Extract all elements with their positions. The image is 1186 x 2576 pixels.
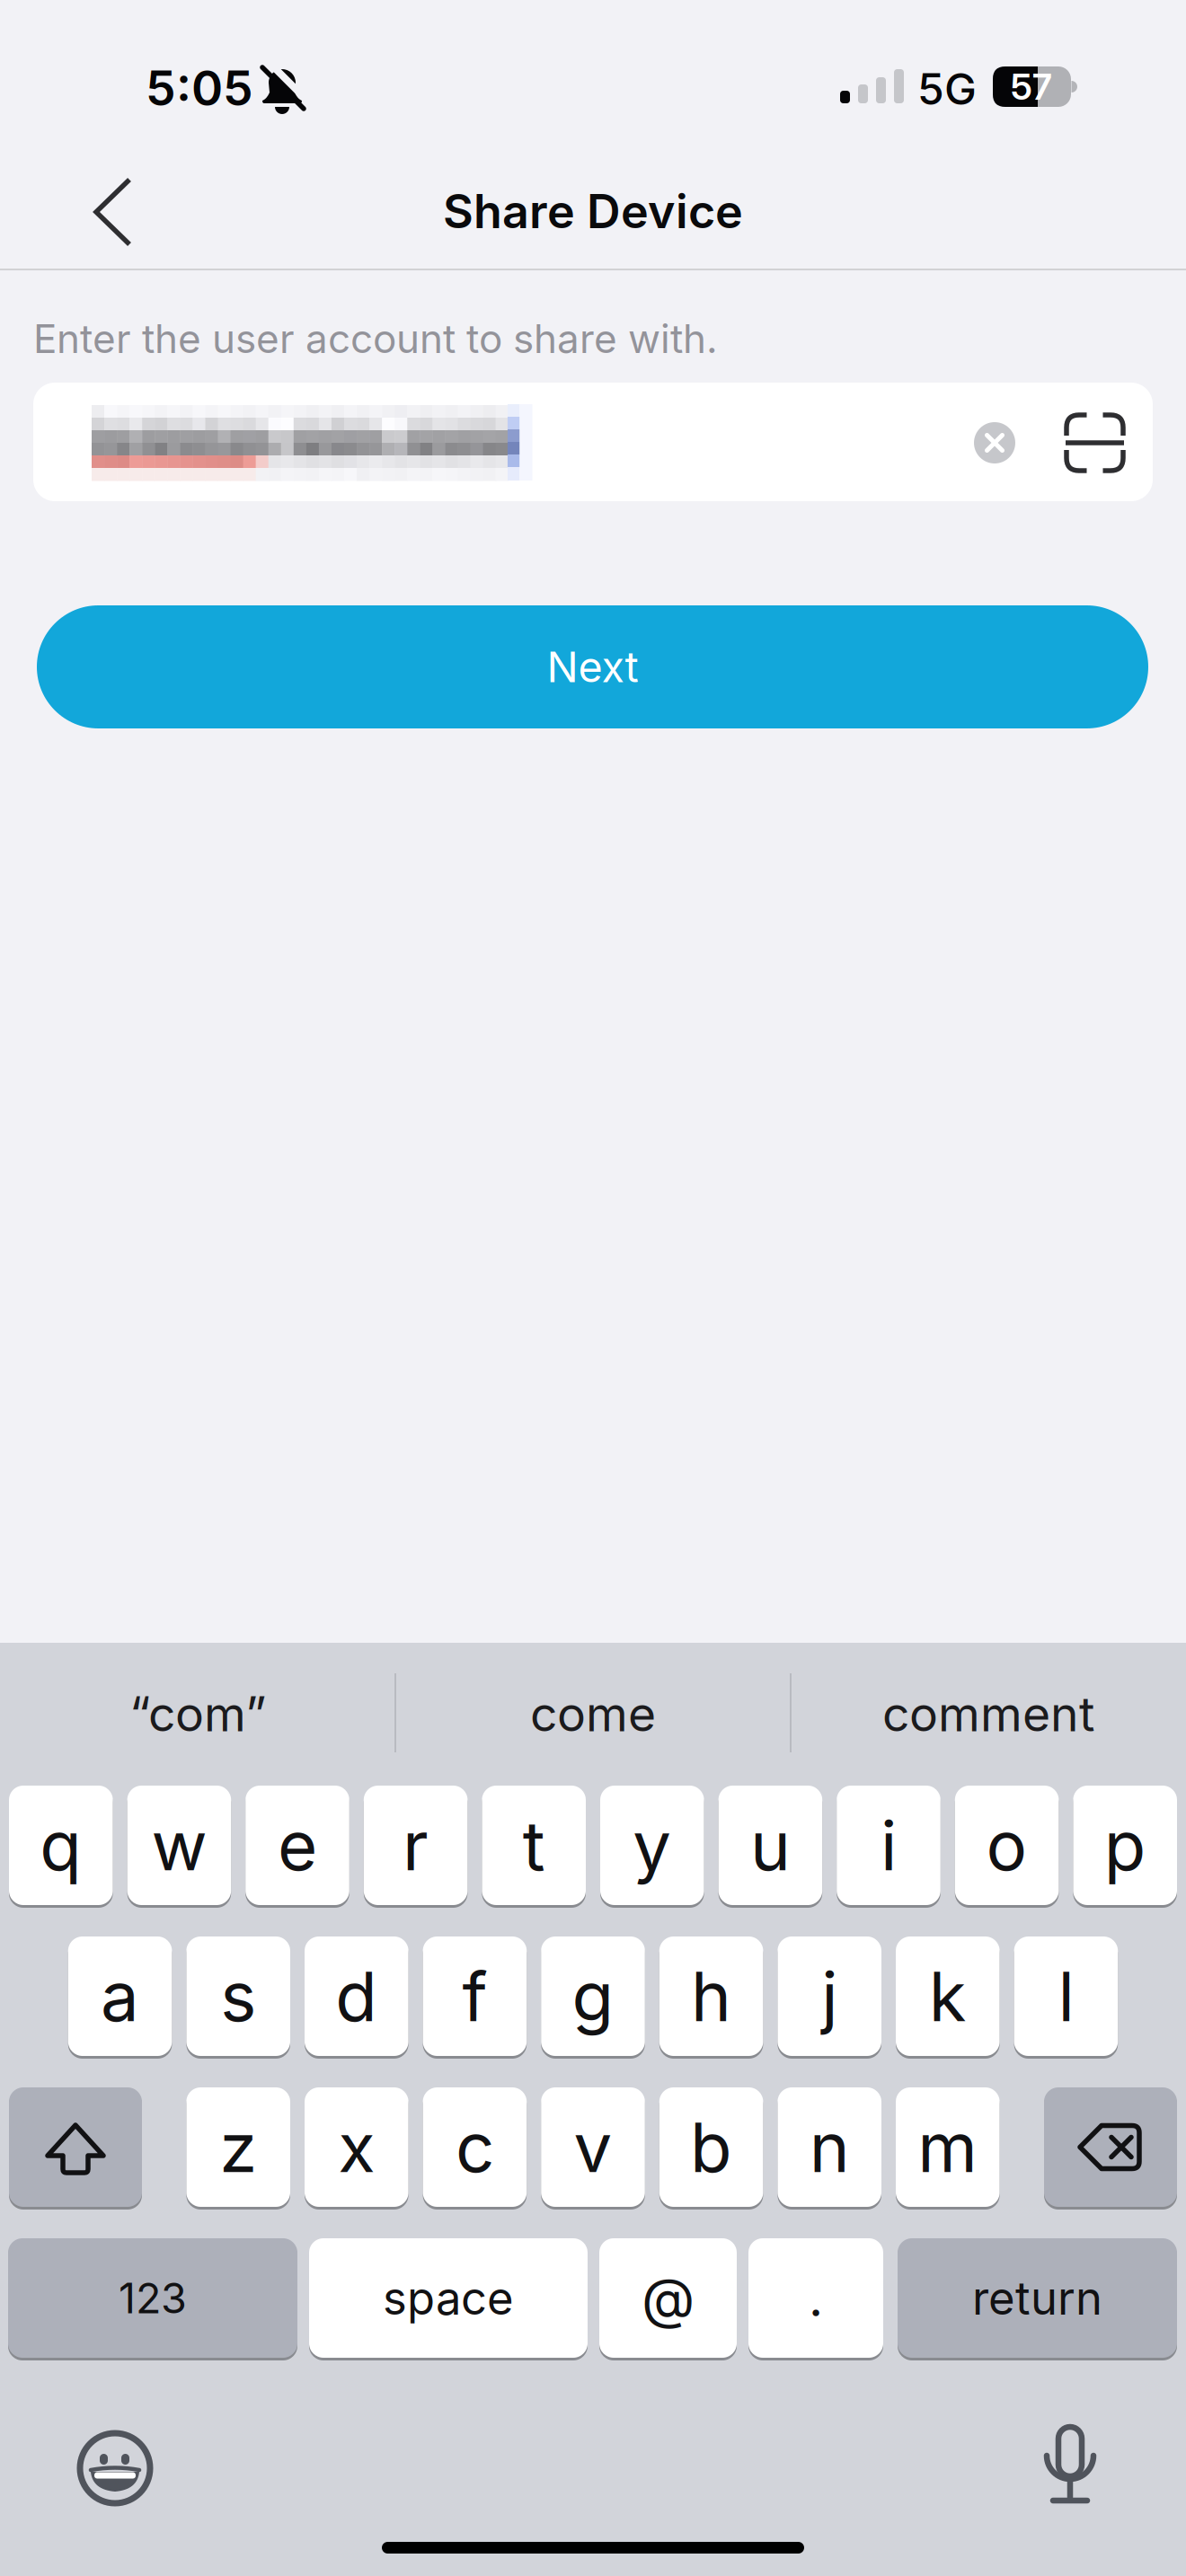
- button[interactable]: p: [1073, 1786, 1177, 1905]
- button[interactable]: Dictate: [1027, 2422, 1113, 2509]
- button[interactable]: User account: [33, 383, 1153, 501]
- button[interactable]: c: [423, 2087, 527, 2207]
- button[interactable]: g: [541, 1936, 645, 2056]
- button[interactable]: m: [896, 2087, 1000, 2207]
- staticText: i: [881, 1805, 897, 1886]
- button[interactable]: 123: [8, 2238, 297, 2358]
- button[interactable]: v: [541, 2087, 645, 2207]
- button[interactable]: i: [837, 1786, 941, 1905]
- button[interactable]: q: [9, 1786, 113, 1905]
- button[interactable]: come: [413, 1664, 773, 1763]
- staticText: s: [220, 1956, 256, 2037]
- button[interactable]: Shift: [9, 2087, 142, 2207]
- staticText: 5:05: [146, 60, 253, 116]
- button[interactable]: s: [186, 1936, 290, 2056]
- staticText: “com”: [129, 1685, 266, 1742]
- button[interactable]: @: [599, 2238, 737, 2358]
- button[interactable]: o: [955, 1786, 1059, 1905]
- button[interactable]: r: [364, 1786, 468, 1905]
- staticText: d: [335, 1956, 378, 2037]
- button[interactable]: x: [305, 2087, 408, 2207]
- staticText: h: [691, 1956, 731, 2037]
- staticText: m: [918, 2107, 978, 2187]
- staticText: p: [1104, 1805, 1146, 1886]
- staticText: v: [574, 2107, 612, 2187]
- button[interactable]: l: [1014, 1936, 1118, 2056]
- staticText: f: [462, 1956, 487, 2037]
- staticText: Share Device: [443, 183, 743, 239]
- staticText: l: [1058, 1956, 1074, 2037]
- staticText: x: [338, 2107, 375, 2187]
- button[interactable]: k: [896, 1936, 1000, 2056]
- button[interactable]: t: [482, 1786, 586, 1905]
- button[interactable]: n: [778, 2087, 881, 2207]
- staticText: .: [809, 2268, 823, 2328]
- staticText: a: [101, 1956, 139, 2037]
- staticText: 5G: [917, 64, 977, 114]
- staticText: b: [690, 2107, 732, 2187]
- staticText: c: [455, 2107, 494, 2187]
- button[interactable]: d: [305, 1936, 408, 2056]
- button[interactable]: Next: [37, 605, 1148, 728]
- staticText: n: [809, 2107, 850, 2187]
- staticText: Next: [547, 642, 638, 692]
- button[interactable]: comment: [809, 1664, 1168, 1763]
- staticText: come: [530, 1685, 656, 1742]
- staticText: w: [151, 1805, 207, 1886]
- button[interactable]: u: [718, 1786, 822, 1905]
- button[interactable]: Emoji: [72, 2425, 158, 2511]
- staticText: @: [642, 2265, 695, 2331]
- staticText: j: [821, 1956, 838, 2037]
- button[interactable]: z: [186, 2087, 290, 2207]
- staticText: return: [972, 2271, 1102, 2325]
- button[interactable]: a: [68, 1936, 172, 2056]
- button[interactable]: w: [127, 1786, 231, 1905]
- staticText: u: [750, 1805, 791, 1886]
- staticText: Enter the user account to share with.: [33, 315, 718, 362]
- button[interactable]: e: [245, 1786, 349, 1905]
- button[interactable]: return: [898, 2238, 1177, 2358]
- staticText: o: [986, 1805, 1028, 1886]
- button[interactable]: Clear text: [974, 422, 1015, 463]
- staticText: z: [219, 2107, 257, 2187]
- button[interactable]: Scan QR code: [1064, 413, 1125, 472]
- staticText: 57: [1011, 65, 1052, 108]
- button[interactable]: f: [423, 1936, 527, 2056]
- staticText: q: [40, 1805, 82, 1886]
- staticText: t: [523, 1805, 545, 1886]
- staticText: y: [633, 1805, 671, 1886]
- staticText: k: [929, 1956, 967, 2037]
- button[interactable]: b: [659, 2087, 763, 2207]
- button[interactable]: j: [778, 1936, 881, 2056]
- button[interactable]: y: [600, 1786, 704, 1905]
- staticText: e: [278, 1805, 317, 1886]
- button[interactable]: space: [309, 2238, 588, 2358]
- button[interactable]: .: [748, 2238, 883, 2358]
- button[interactable]: h: [659, 1936, 763, 2056]
- button[interactable]: Back: [92, 176, 135, 248]
- button[interactable]: “com”: [18, 1664, 377, 1763]
- button[interactable]: Delete: [1044, 2087, 1177, 2207]
- staticText: space: [383, 2271, 514, 2325]
- staticText: 123: [119, 2273, 187, 2323]
- staticText: comment: [882, 1685, 1094, 1742]
- staticText: r: [403, 1805, 429, 1886]
- staticText: g: [572, 1956, 614, 2037]
